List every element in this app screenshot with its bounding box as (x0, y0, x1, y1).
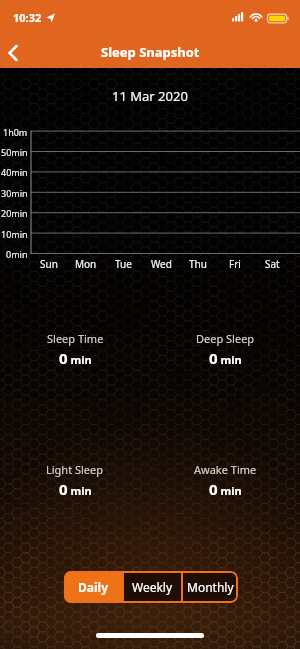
staticText: 1h0m (3, 126, 28, 138)
staticText: 0 min (59, 348, 92, 368)
staticText: 50min (1, 146, 28, 158)
button[interactable]: Monthly (183, 571, 238, 603)
staticText: Deep Sleep (196, 331, 255, 346)
staticText: Light Sleep (46, 462, 104, 477)
staticText: Monthly (187, 579, 234, 595)
staticText: 10:32 (13, 10, 42, 25)
staticText: Tue (115, 257, 132, 271)
staticText: 30min (1, 187, 28, 199)
staticText: Mon (75, 257, 97, 271)
button[interactable]: Daily (64, 571, 122, 603)
staticText: Sleep Snapshot (101, 43, 200, 61)
staticText: Awake Time (194, 462, 257, 477)
staticText: Fri (229, 257, 241, 271)
staticText: Sat (265, 257, 280, 271)
staticText: 0 min (59, 479, 92, 499)
staticText: 40min (1, 166, 28, 178)
staticText: 0 min (209, 348, 242, 368)
staticText: 0 min (209, 479, 242, 499)
staticText: Daily (78, 579, 108, 595)
button[interactable] (0, 38, 34, 68)
staticText: 10min (1, 228, 28, 240)
staticText: 11 Mar 2020 (112, 87, 188, 105)
staticText: Wed (151, 257, 172, 271)
staticText: Thu (189, 257, 207, 271)
button[interactable]: Weekly (124, 571, 181, 603)
staticText: 0min (6, 248, 28, 260)
staticText: Sleep Time (47, 331, 104, 346)
staticText: Weekly (132, 579, 173, 595)
staticText: 20min (1, 207, 28, 219)
staticText: Sun (40, 257, 58, 271)
